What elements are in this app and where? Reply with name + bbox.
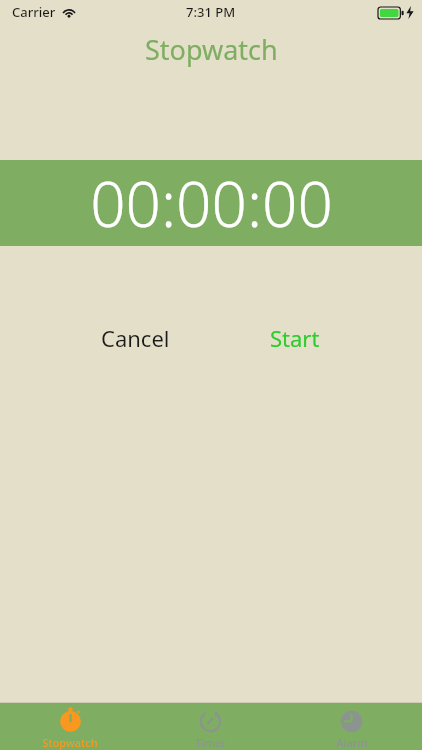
button[interactable]: Cancel <box>70 318 200 358</box>
button[interactable]: Start <box>240 318 350 358</box>
other: Alarm <box>338 706 365 733</box>
staticText: Cancel <box>101 323 170 353</box>
button[interactable]: Timer <box>140 703 281 750</box>
staticText: 00:00:00 <box>90 161 333 245</box>
staticText: Stopwatch <box>42 735 98 750</box>
other: Timer <box>197 706 224 733</box>
staticText: Carrier <box>12 3 56 21</box>
staticText: Start <box>270 323 320 353</box>
button[interactable]: Stopwatch <box>0 703 140 750</box>
staticText: 7:31 PM <box>186 3 236 21</box>
button[interactable]: Alarm <box>281 703 422 750</box>
other: Stopwatch <box>57 706 84 733</box>
staticText: Timer <box>195 735 226 750</box>
staticText: Alarm <box>336 735 368 750</box>
staticText: Stopwatch <box>145 31 278 68</box>
